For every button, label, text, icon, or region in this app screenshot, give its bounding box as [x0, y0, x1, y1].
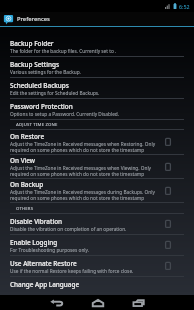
staticText: Use if the normal Restore keeps failing …: [10, 268, 134, 274]
button[interactable]: Toggle Disable Vibration: [160, 214, 194, 234]
staticText: ADJUST TIME ZONE: [16, 121, 58, 127]
button[interactable]: Change App Language: [0, 277, 194, 295]
button[interactable]: On View: [0, 155, 194, 178]
button[interactable]: Backup Folder: [0, 36, 194, 56]
button[interactable]: Use Alternate Restore: [0, 256, 194, 276]
staticText: Disable the vibration on completion of a…: [10, 226, 127, 232]
staticText: Use Alternate Restore: [10, 259, 77, 268]
button[interactable]: Toggle Use Alternate Restore: [160, 256, 194, 276]
staticText: Password Protection: [10, 102, 73, 111]
button[interactable]: Toggle On Backup: [160, 179, 194, 202]
staticText: Change App Language: [10, 280, 80, 289]
button[interactable]: On Restore: [0, 130, 194, 154]
button[interactable]: Recent apps: [124, 295, 152, 310]
staticText: Various settings for the Backup.: [10, 69, 81, 75]
staticText: Adjust the TimeZone in Received messages…: [10, 165, 159, 177]
staticText: Disable Vibration: [10, 217, 63, 226]
staticText: Adjust the TimeZone in Received messages…: [10, 189, 159, 201]
staticText: OTHERS: [16, 205, 34, 211]
staticText: 6:52: [179, 3, 190, 10]
button[interactable]: Toggle On View: [160, 155, 194, 178]
button[interactable]: Enable Logging: [0, 235, 194, 255]
button[interactable]: Scheduled Backups: [0, 78, 194, 98]
staticText: Backup Settings: [10, 60, 60, 69]
staticText: Options to setup a Password. Currently D…: [10, 111, 119, 117]
staticText: The folder for the backup files. Current…: [10, 48, 117, 54]
button[interactable]: On Backup: [0, 179, 194, 202]
staticText: Scheduled Backups: [10, 81, 69, 90]
button[interactable]: Password Protection: [0, 99, 194, 119]
staticText: For Troubleshooting purposes only.: [10, 247, 90, 253]
staticText: Enable Logging: [10, 238, 58, 247]
staticText: On View: [10, 156, 36, 165]
button[interactable]: Toggle On Restore: [160, 130, 194, 154]
staticText: Edit the settings for Scheduled Backups.: [10, 90, 100, 96]
staticText: On Backup: [10, 180, 44, 189]
staticText: Adjust the TimeZone in Received messages…: [10, 141, 159, 153]
button[interactable]: Backup Settings: [0, 57, 194, 77]
button[interactable]: Toggle Enable Logging: [160, 235, 194, 255]
staticText: Backup Folder: [10, 39, 54, 48]
button[interactable]: Home: [84, 295, 112, 310]
button[interactable]: Disable Vibration: [0, 214, 194, 234]
staticText: Preferences: [17, 15, 50, 23]
button[interactable]: Back: [42, 295, 70, 310]
staticText: On Restore: [10, 132, 45, 141]
